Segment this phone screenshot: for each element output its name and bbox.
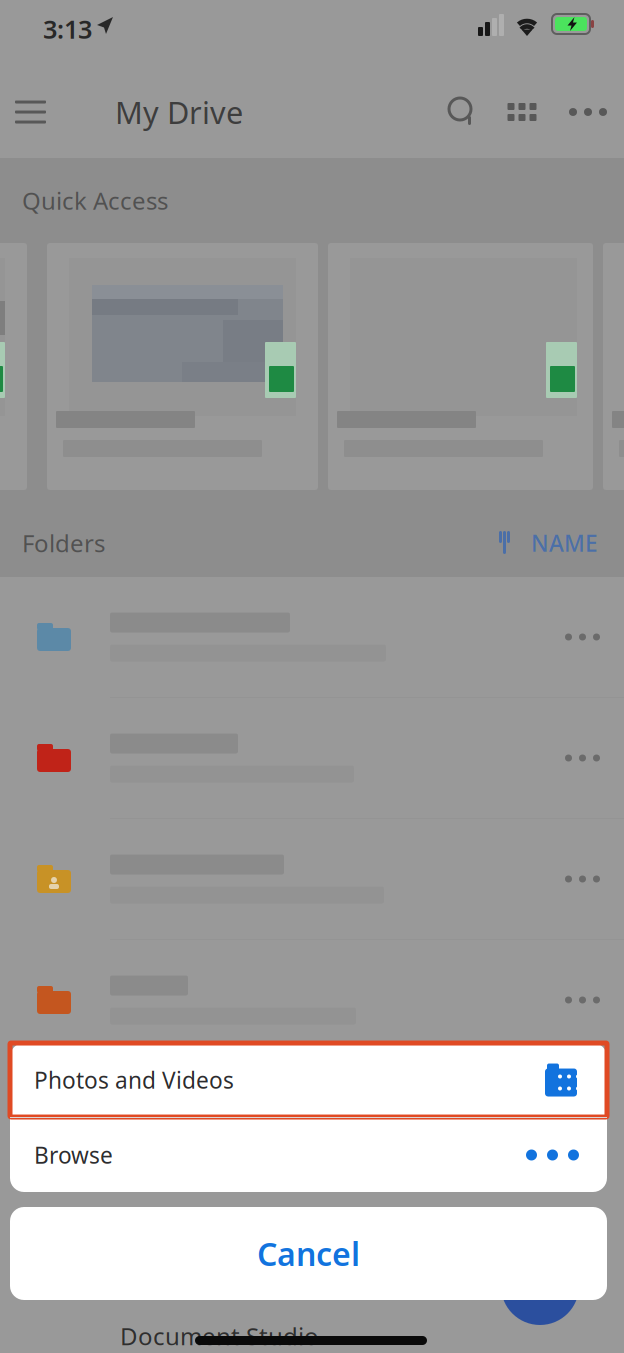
staticText: Folders xyxy=(22,527,105,559)
button[interactable] xyxy=(0,819,624,939)
staticText: NAME xyxy=(531,528,598,558)
button[interactable] xyxy=(0,940,624,1060)
staticText: Cancel xyxy=(257,1232,360,1275)
button[interactable]: Navigation menu xyxy=(0,66,61,158)
button[interactable]: More options xyxy=(552,66,624,158)
staticText: Document Studio xyxy=(120,1320,319,1352)
button[interactable]: Browse xyxy=(10,1118,607,1192)
staticText: Quick Access xyxy=(22,185,168,216)
staticText: Photos and Videos xyxy=(34,1065,234,1095)
button[interactable]: Switch to grid view xyxy=(492,66,552,158)
button[interactable]: Search xyxy=(434,66,492,158)
staticText: My Drive xyxy=(115,92,243,132)
staticText: Browse xyxy=(34,1140,113,1170)
button[interactable] xyxy=(0,577,624,697)
button[interactable]: Cancel xyxy=(10,1207,607,1300)
button[interactable] xyxy=(0,698,624,818)
staticText: 3:13 xyxy=(43,12,92,46)
button[interactable]: Photos and Videos xyxy=(10,1043,607,1117)
button[interactable]: NAME xyxy=(494,528,624,558)
